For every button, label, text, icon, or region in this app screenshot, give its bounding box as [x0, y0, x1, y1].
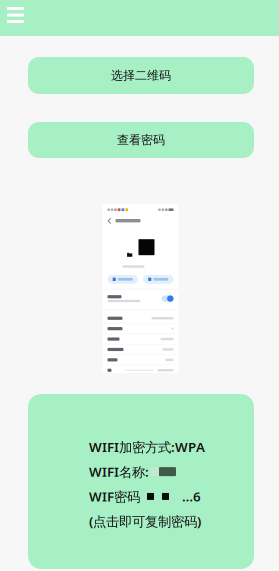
staticText: WIFI加密方式:WPA: [89, 438, 205, 456]
staticText: WIFI名称:: [89, 463, 149, 481]
button[interactable]: Menu: [0, 0, 34, 36]
staticText: WIF密码: [89, 487, 140, 505]
button[interactable]: 查看密码: [28, 122, 254, 158]
staticText: …6: [182, 488, 201, 505]
button[interactable]: 选择二维码: [28, 57, 254, 94]
staticText: 选择二维码: [111, 68, 171, 83]
staticText: 查看密码: [117, 133, 165, 147]
staticText: (点击即可复制密码): [89, 512, 201, 530]
button[interactable]: WIFI加密方式:WPA: [28, 394, 254, 569]
